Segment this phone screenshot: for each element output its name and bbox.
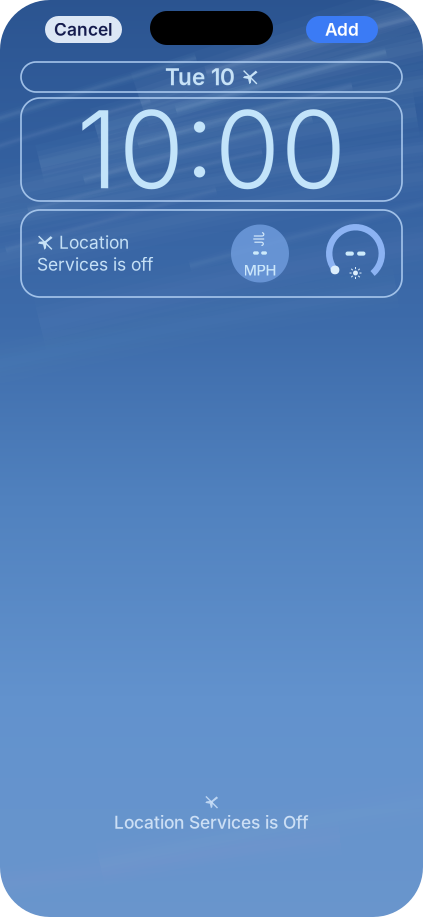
staticText: Location Services is Off [114, 812, 309, 833]
button[interactable]: 10:00 [21, 98, 402, 201]
staticText: Cancel [54, 19, 113, 40]
button[interactable]: Tue 10 [21, 62, 402, 92]
staticText: Location [59, 232, 129, 253]
staticText: Services is off [37, 254, 153, 275]
button[interactable]: Location [21, 210, 402, 297]
button[interactable]: Add [306, 16, 378, 43]
staticText: Tue 10 [165, 63, 235, 91]
staticText: 10:00 [76, 85, 346, 214]
button[interactable]: Cancel [45, 16, 122, 43]
staticText: Add [325, 19, 359, 40]
staticText: MPH [243, 261, 276, 279]
